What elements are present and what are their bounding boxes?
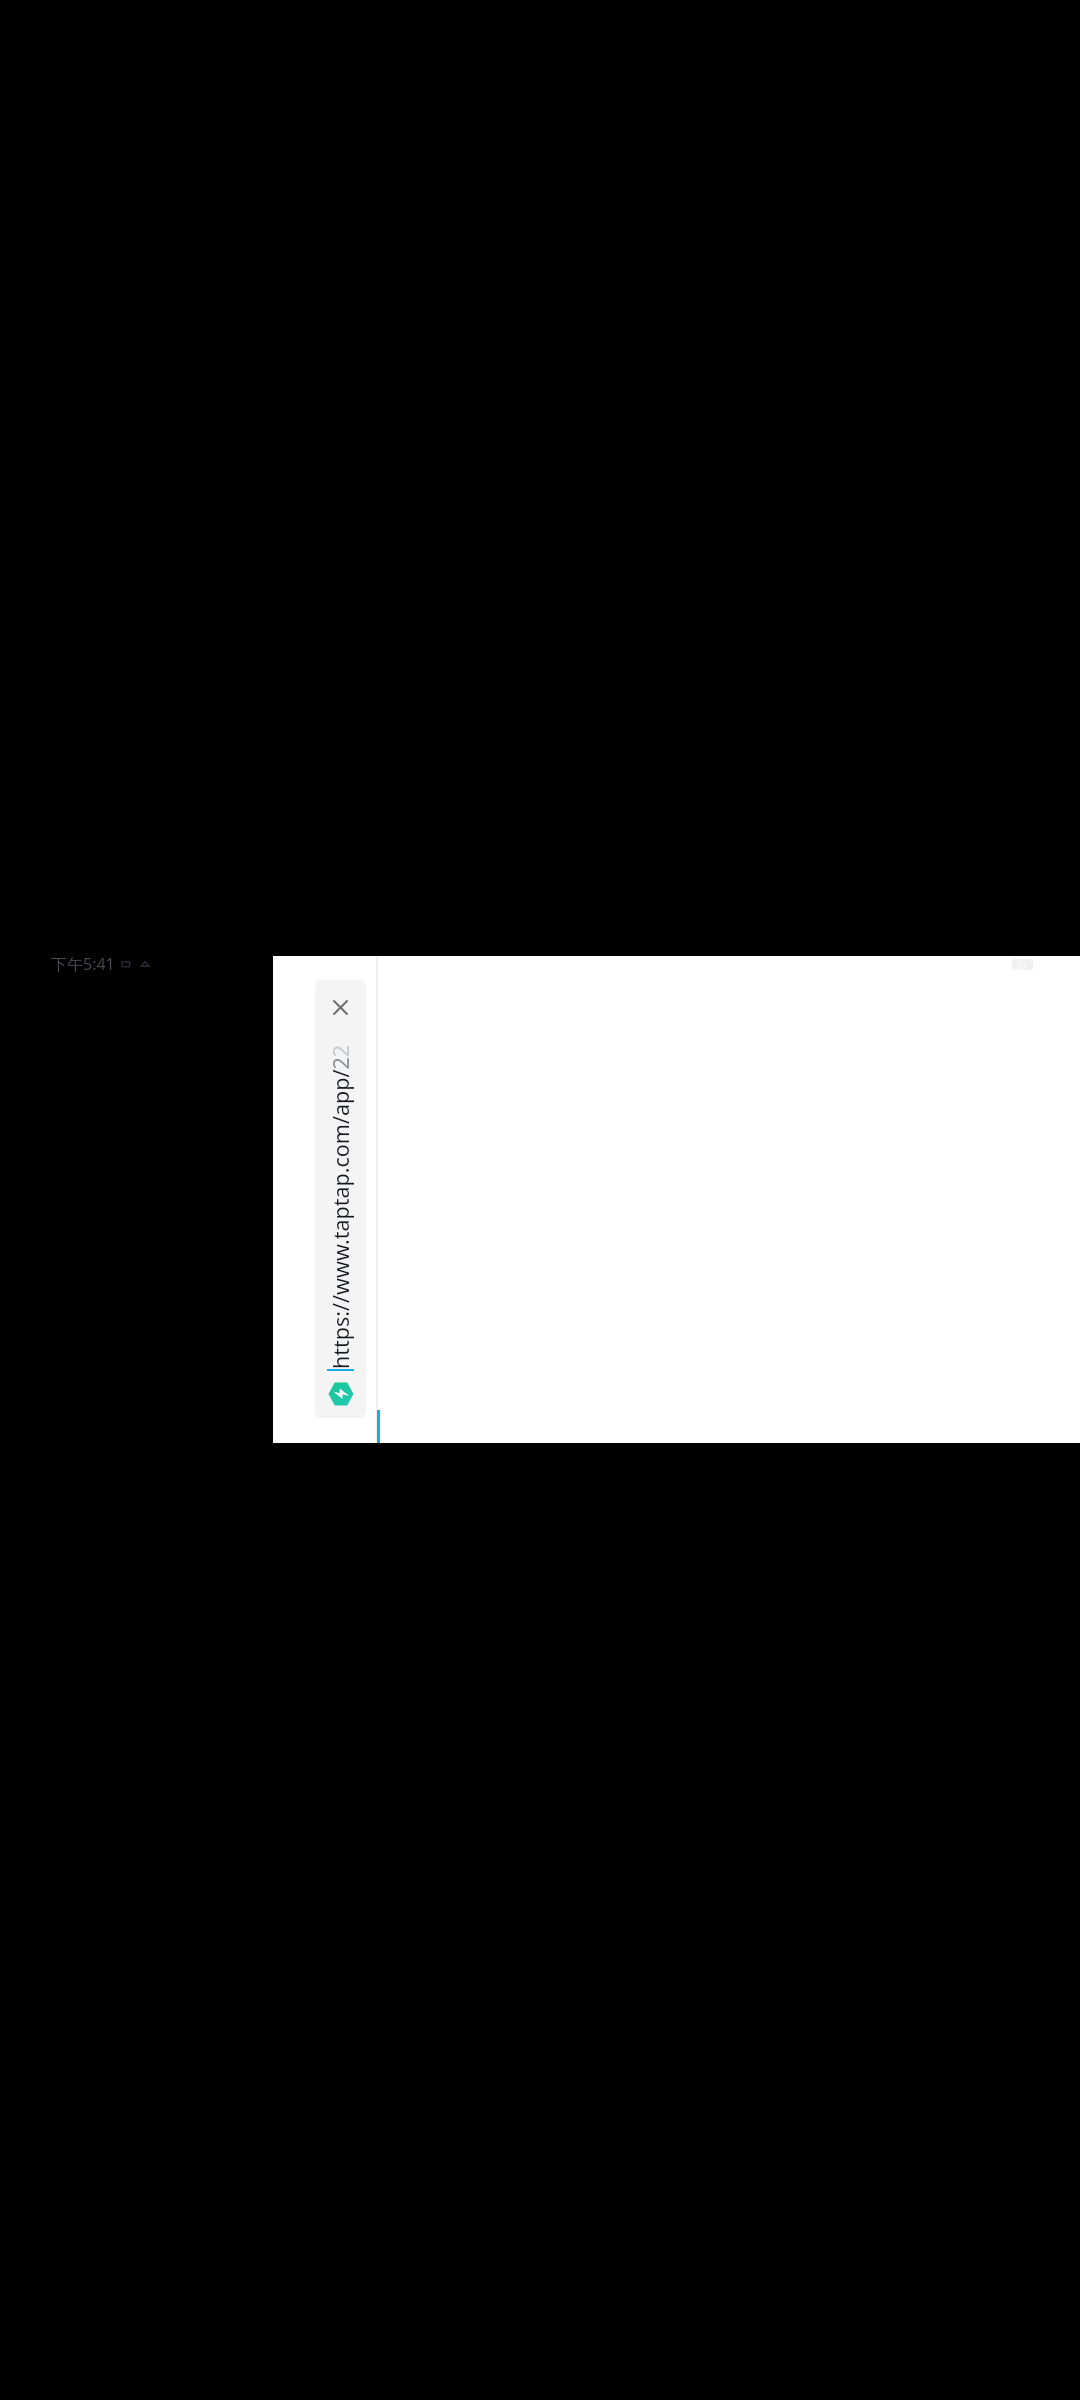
button[interactable]: https://www.taptap.com/app/22 — [315, 980, 366, 1418]
staticText: 下午5:41 — [51, 953, 115, 975]
button[interactable]: Close — [333, 1000, 348, 1015]
staticText: https://www.taptap.com/app/22 — [326, 1044, 355, 1369]
